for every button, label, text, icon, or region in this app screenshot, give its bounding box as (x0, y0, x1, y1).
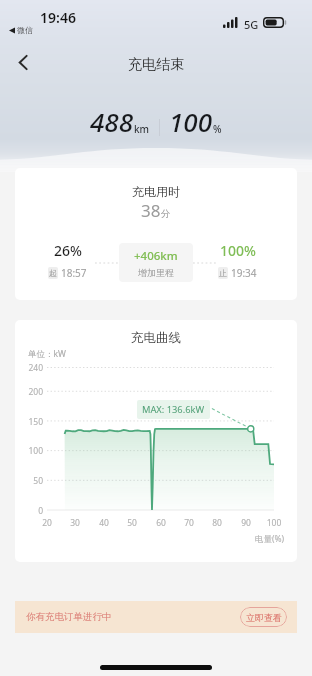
staticText: 240 (15, 362, 43, 374)
staticText: MAX: 136.6kW (142, 403, 205, 416)
staticText: 100% (220, 241, 256, 260)
staticText: 50 (15, 475, 43, 487)
staticText: 80 (204, 517, 230, 529)
staticText: 38 (141, 199, 161, 222)
staticText: +406km (134, 248, 178, 264)
staticText: 分 (161, 208, 171, 220)
staticText: 30 (62, 517, 88, 529)
staticText: 200 (15, 386, 43, 398)
staticText: 90 (233, 517, 259, 529)
staticText: % (213, 122, 222, 136)
staticText: 19:34 (231, 266, 257, 280)
staticText: 微信 (17, 25, 33, 35)
staticText: 充电用时 (132, 184, 180, 199)
staticText: 止 (219, 268, 227, 278)
staticText: 增加里程 (138, 267, 174, 278)
staticText: 100 (15, 445, 43, 457)
staticText: 单位：kW (28, 348, 66, 360)
button[interactable]: 你有充电订单进行中 (15, 601, 297, 633)
staticText: 60 (148, 517, 174, 529)
staticText: 起 (49, 268, 57, 278)
staticText: 40 (91, 517, 117, 529)
staticText: 26% (54, 241, 82, 260)
button[interactable]: Back (0, 42, 46, 86)
staticText: 100 (169, 104, 212, 139)
staticText: 70 (176, 517, 202, 529)
staticText: 20 (34, 517, 60, 529)
staticText: 50 (119, 517, 145, 529)
staticText: 100 (261, 517, 287, 529)
staticText: 充电结束 (128, 56, 184, 74)
staticText: 充电曲线 (131, 330, 181, 346)
staticText: 立即查看 (246, 612, 282, 623)
staticText: 18:57 (61, 266, 87, 280)
staticText: 你有充电订单进行中 (26, 611, 112, 623)
staticText: 5G (244, 17, 259, 32)
staticText: 电量(%) (255, 533, 285, 545)
staticText: 19:46 (40, 8, 76, 27)
button[interactable]: 立即查看 (240, 607, 287, 627)
staticText: 0 (15, 505, 43, 517)
staticText: 150 (15, 416, 43, 428)
staticText: 488 (90, 104, 133, 139)
staticText: km (134, 122, 150, 136)
